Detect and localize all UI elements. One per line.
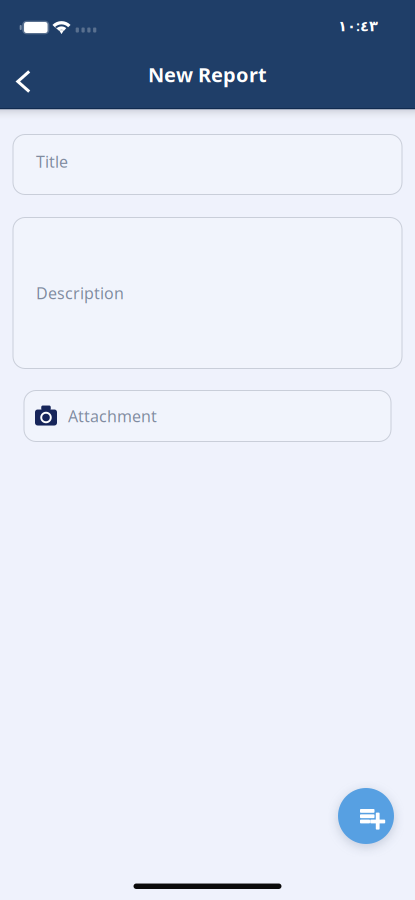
staticText: ١٠:٤٣ [338,16,378,35]
staticText: Description [36,282,124,304]
button[interactable]: Description [13,217,402,368]
button[interactable]: Title [13,134,402,194]
button[interactable]: New entry [338,788,394,844]
staticText: New Report [148,61,267,88]
staticText: Title [36,151,68,172]
button[interactable]: Attachment [24,390,391,441]
staticText: Attachment [68,405,157,427]
button[interactable]: Back [0,55,45,108]
